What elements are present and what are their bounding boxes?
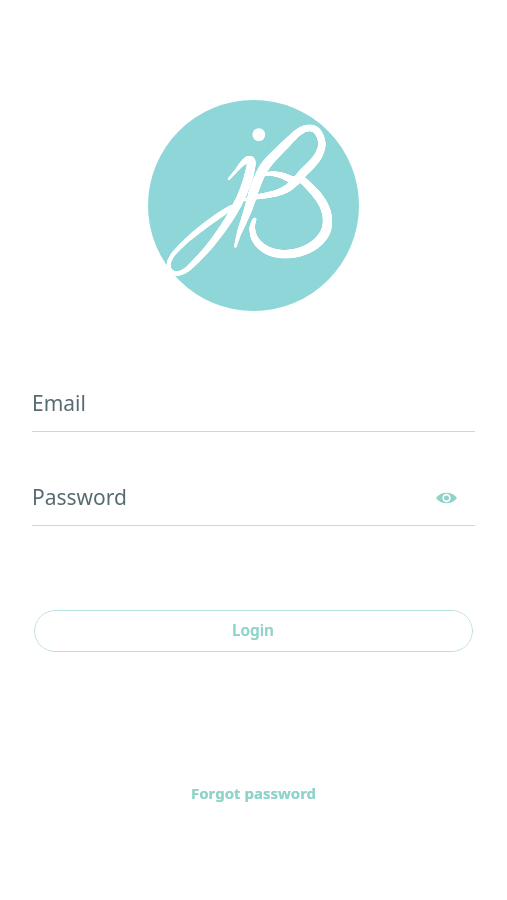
button[interactable]: Login [34,610,473,652]
button[interactable]: Show password [429,480,464,515]
staticText: Forgot password [191,783,317,803]
staticText: Login [232,619,275,640]
staticText: Password [32,483,127,512]
staticText: Email [32,389,86,418]
button[interactable]: Forgot password [179,777,329,809]
